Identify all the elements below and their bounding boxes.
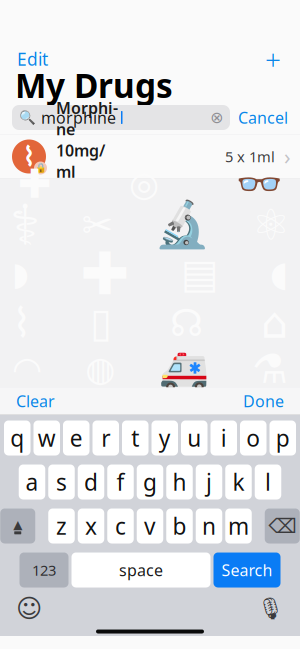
staticText: ▤ [181,251,219,297]
button[interactable]: p [269,420,296,455]
staticText: w [38,423,56,453]
staticText: Edit [17,47,48,70]
button[interactable]: Edit [15,43,50,74]
staticText: morphine [41,107,116,128]
button[interactable]: l [255,464,281,499]
staticText: z [56,511,67,541]
button[interactable]: x [78,508,104,543]
staticText: v [144,511,156,541]
staticText: Morphine 10mg/ml [56,97,118,182]
button[interactable]: s [48,464,75,499]
staticText: q [10,423,24,453]
staticText: g [143,467,157,497]
button[interactable]: u [181,420,207,455]
staticText: ✚ [18,161,52,207]
staticText: + [265,40,281,78]
button[interactable]: k [225,464,252,499]
button[interactable]: Delete [265,508,300,543]
button[interactable]: t [122,420,148,455]
button[interactable]: Done [241,384,286,418]
staticText: 🔬 [154,199,210,251]
button[interactable]: y [151,420,178,455]
button[interactable]: j [196,464,222,499]
button[interactable]: ⌇ [0,134,300,178]
staticText: Search [221,559,272,581]
staticText: 🔍 [19,110,36,125]
staticText: u [187,423,201,453]
staticText: 🔒 [34,163,46,173]
staticText: 5 x 1ml [225,147,275,166]
staticText: i [221,423,227,453]
staticText: d [84,467,98,497]
button[interactable]: Emoji [12,592,46,625]
button[interactable]: Cancel [238,103,288,132]
button[interactable]: f [107,464,134,499]
button[interactable]: r [92,420,119,455]
staticText: a [25,467,38,497]
button[interactable]: Add [261,39,285,79]
staticText: o [246,423,260,453]
staticText: ⌫ [268,515,296,537]
button[interactable]: a [19,464,45,499]
staticText: p [276,423,290,453]
button[interactable]: g [137,464,163,499]
staticText: › [284,142,291,171]
staticText: x [85,511,97,541]
staticText: My Drugs [15,63,173,107]
staticText: ⚗ [252,346,288,392]
staticText: r [101,423,110,453]
staticText: m [228,511,249,541]
button[interactable]: h [166,464,193,499]
staticText: ▲ [13,518,22,531]
button[interactable]: Shift [0,508,35,543]
button[interactable]: Dictation [253,594,288,623]
staticText: ◖ [270,254,288,294]
button[interactable]: n [196,508,222,543]
staticText: ◗ [12,256,29,292]
staticText: ◍ [85,349,115,389]
staticText: k [232,467,244,497]
staticText: ⌇ [22,141,35,172]
staticText: ☊ [170,302,203,344]
staticText: ⊗ [210,108,223,127]
staticText: ⌂ [261,299,288,347]
staticText: Cancel [238,107,288,128]
button[interactable]: d [78,464,104,499]
staticText: e [70,423,83,453]
staticText: 🎙 [257,596,284,621]
button[interactable]: Search [213,552,280,587]
button[interactable]: w [33,420,60,455]
button[interactable]: space [71,552,210,587]
staticText: ◎ [129,164,159,204]
button[interactable]: v [137,508,163,543]
staticText: s [56,467,67,497]
button[interactable]: c [107,508,134,543]
staticText: h [172,467,186,497]
staticText: c [115,511,126,541]
staticText: Done [243,390,284,412]
button[interactable]: e [63,420,89,455]
staticText: f [116,467,124,497]
staticText: ☺ [16,594,42,623]
button[interactable]: q [4,420,30,455]
staticText: ✚ [80,241,129,307]
button[interactable]: m [225,508,252,543]
button[interactable]: b [166,508,193,543]
staticText: b [172,511,186,541]
staticText: t [131,423,139,453]
staticText: l [265,467,271,497]
button[interactable]: i [210,420,237,455]
button[interactable]: Clear [14,384,57,418]
button[interactable]: z [48,508,75,543]
staticText: 👓 [236,163,282,205]
staticText: n [202,511,216,541]
button[interactable]: 123 [19,552,68,587]
button[interactable]: o [240,420,266,455]
staticText: y [159,423,171,453]
